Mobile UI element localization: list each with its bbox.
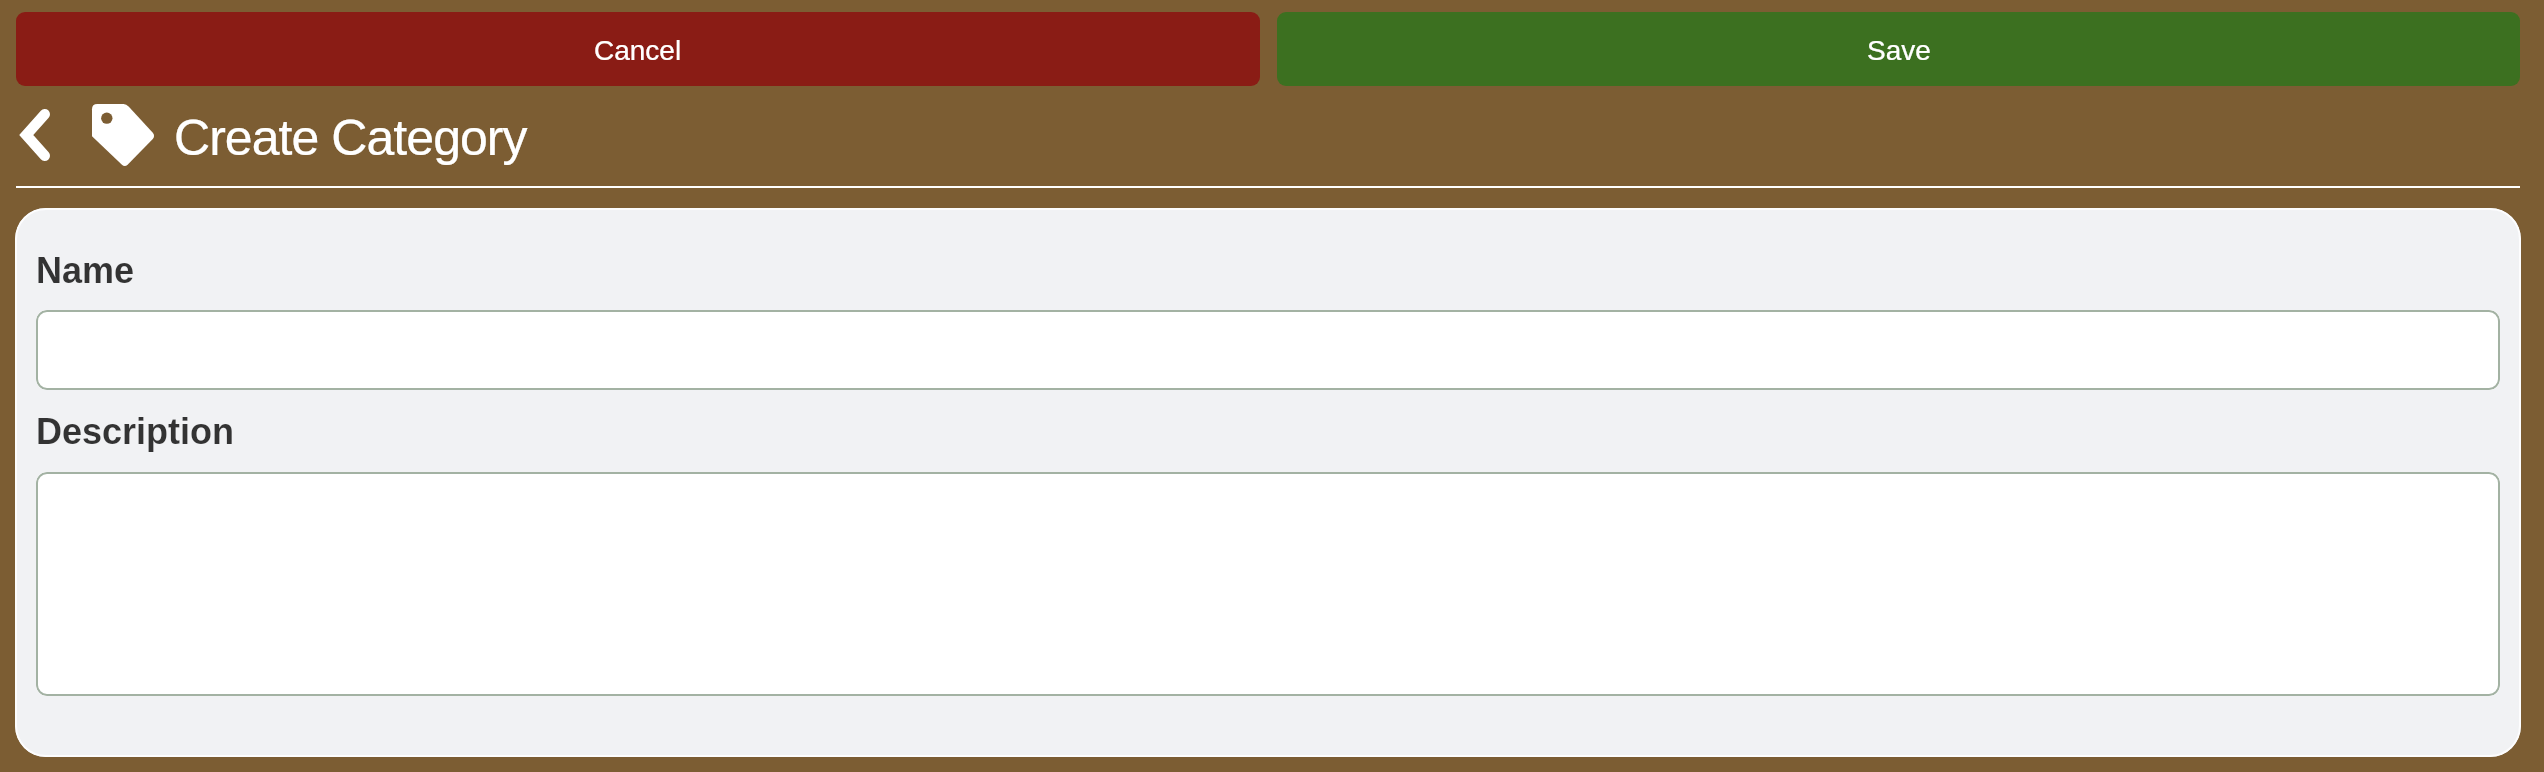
- staticText: Description: [36, 411, 235, 451]
- button[interactable]: [36, 472, 2500, 696]
- staticText: Cancel: [594, 35, 682, 66]
- button[interactable]: Cancel: [16, 12, 1260, 86]
- staticText: Save: [1867, 35, 1931, 66]
- button[interactable]: [36, 310, 2500, 390]
- staticText: Name: [36, 250, 135, 290]
- button[interactable]: Back: [2, 97, 68, 173]
- staticText: Create Category: [174, 110, 527, 166]
- button[interactable]: Save: [1277, 12, 2520, 86]
